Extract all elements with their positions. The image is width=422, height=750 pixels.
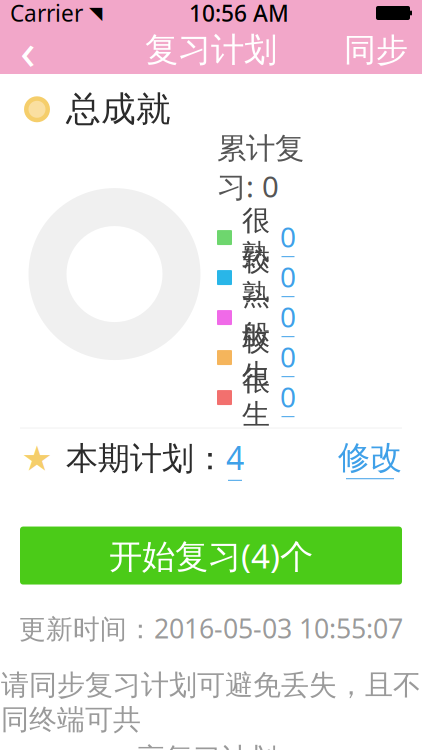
staticText: 0	[280, 338, 296, 375]
staticText: ★	[21, 439, 52, 478]
staticText: 更新时间：2016-05-03 10:55:07	[19, 611, 403, 646]
button[interactable]: Back	[0, 26, 56, 74]
staticText: 0	[280, 258, 296, 295]
button[interactable]: 同步	[330, 26, 422, 74]
staticText: 0	[280, 298, 296, 335]
button[interactable]: 较熟	[217, 258, 319, 298]
button[interactable]: 很熟	[217, 218, 319, 258]
staticText	[83, 0, 89, 28]
button[interactable]: 一般	[217, 298, 319, 338]
button[interactable]: ★	[0, 429, 422, 489]
staticText: ‹	[20, 16, 36, 84]
staticText: ◥	[89, 3, 102, 23]
button[interactable]: 较生	[217, 338, 319, 378]
staticText: 很生	[242, 363, 270, 432]
staticText: 请同步复习计划可避免丢失，且不同终端可共	[1, 668, 421, 737]
staticText: 本期计划：	[66, 439, 226, 478]
staticText: 一般	[242, 283, 270, 352]
staticText: 较熟	[242, 243, 270, 312]
button[interactable]: 很生	[217, 378, 319, 418]
staticText: Carrier	[10, 0, 83, 28]
staticText: 4	[226, 436, 244, 479]
staticText: 0	[280, 218, 296, 255]
staticText: 总成就	[66, 88, 171, 131]
staticText: 累计复习: 0	[217, 131, 304, 206]
button[interactable]: 开始复习(4)个	[20, 527, 402, 585]
staticText: 10:56 AM	[189, 0, 289, 28]
staticText: 很熟	[242, 203, 270, 272]
staticText: 开始复习(4)个	[109, 533, 313, 578]
staticText: 复习计划	[145, 29, 277, 70]
staticText: 享复习计划.	[137, 739, 285, 750]
staticText: 0	[280, 378, 296, 415]
staticText: 同步	[344, 30, 408, 70]
staticText: 较生	[242, 323, 270, 392]
staticText: 修改	[338, 438, 402, 477]
